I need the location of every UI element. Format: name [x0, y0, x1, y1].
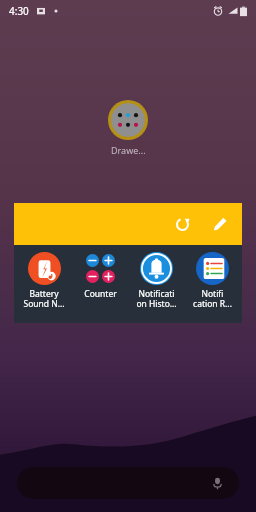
- button[interactable]: Voice search: [207, 473, 227, 493]
- button[interactable]: Notificati on Histo...: [130, 251, 182, 309]
- button[interactable]: Decrement: [86, 270, 99, 283]
- staticText: Drawe...: [111, 144, 146, 156]
- button[interactable]: Refresh: [168, 210, 196, 238]
- other: Drawer: [108, 100, 148, 140]
- button[interactable]: Decrement: [86, 254, 99, 267]
- button[interactable]: Increment: [102, 270, 115, 283]
- button[interactable]: Drawer: [108, 100, 148, 156]
- staticText: Counter: [84, 288, 117, 300]
- button[interactable]: Edit: [206, 210, 234, 238]
- staticText: Notifi cation R...: [193, 288, 232, 309]
- button[interactable]: Notifi cation R...: [186, 251, 238, 309]
- button[interactable]: Battery Sound N...: [18, 251, 70, 309]
- button[interactable]: Increment: [102, 254, 115, 267]
- staticText: Battery Sound N...: [23, 288, 65, 309]
- button[interactable]: Decrement: [74, 251, 126, 300]
- button[interactable]: Search: [17, 467, 239, 499]
- staticText: 4:30: [9, 4, 29, 18]
- staticText: Notificati on Histo...: [136, 288, 177, 309]
